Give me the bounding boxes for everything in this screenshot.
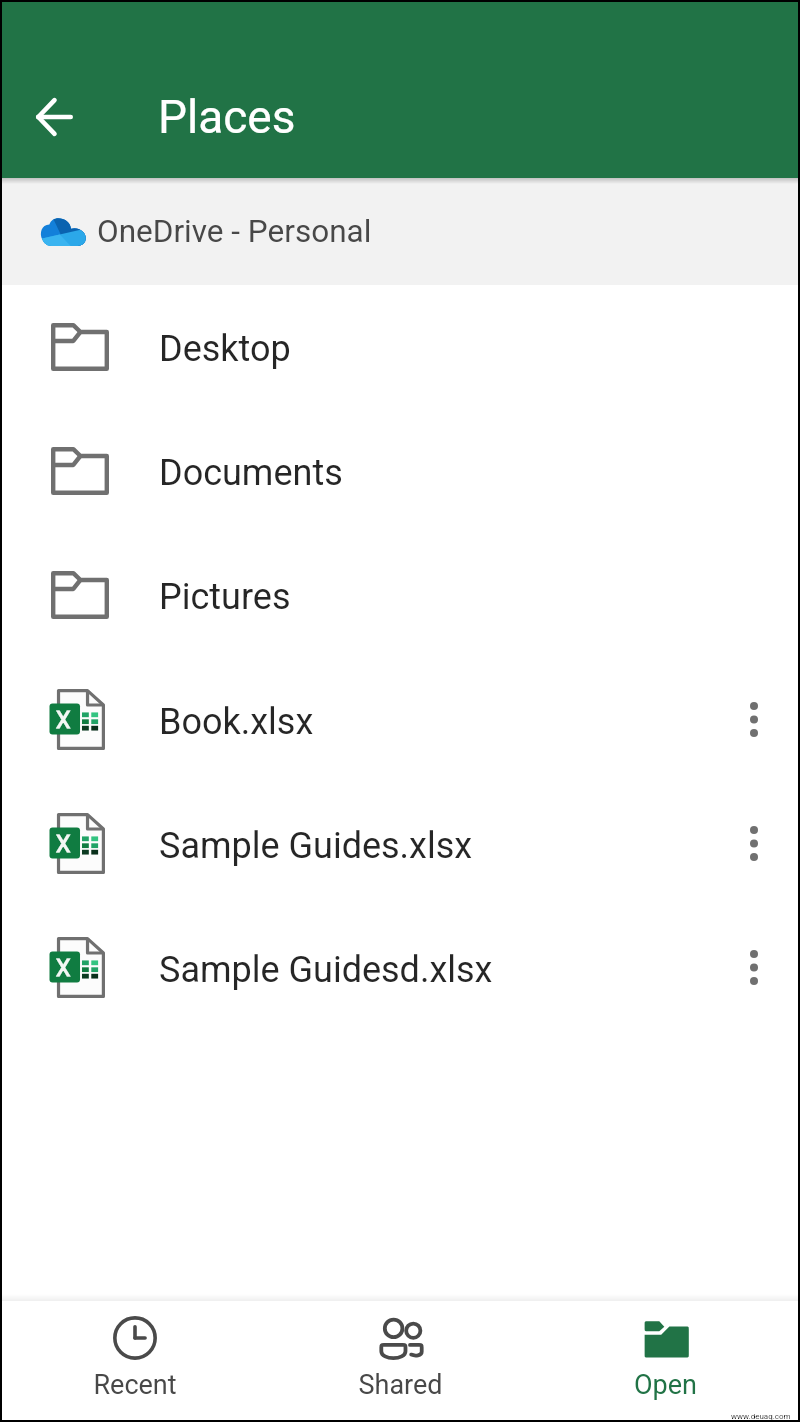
staticText: Desktop <box>159 328 291 370</box>
staticText: X <box>56 831 71 858</box>
staticText: Places <box>158 90 296 144</box>
button[interactable]: More options <box>714 679 794 759</box>
button[interactable]: Desktop <box>2 285 798 409</box>
button[interactable]: Pictures <box>2 533 798 657</box>
staticText: Recent <box>93 1369 177 1401</box>
button[interactable]: More options <box>714 803 794 883</box>
button[interactable]: More options <box>714 927 794 1007</box>
button[interactable]: X <box>2 905 798 1029</box>
button[interactable]: Documents <box>2 409 798 533</box>
staticText: Documents <box>159 452 343 494</box>
staticText: OneDrive - Personal <box>97 213 372 250</box>
staticText: Sample Guides.xlsx <box>159 825 714 867</box>
staticText: Open <box>634 1369 697 1401</box>
staticText: X <box>56 707 71 734</box>
button[interactable]: X <box>2 781 798 905</box>
staticText: X <box>56 955 71 982</box>
button[interactable]: Back <box>17 80 91 154</box>
staticText: Book.xlsx <box>159 701 714 743</box>
button[interactable]: X <box>2 657 798 781</box>
staticText: Sample Guidesd.xlsx <box>159 949 714 991</box>
button[interactable]: Recent <box>2 1294 268 1420</box>
staticText: www.deuaq.com <box>731 1412 791 1421</box>
staticText: Pictures <box>159 576 291 618</box>
button[interactable]: Open <box>533 1294 798 1420</box>
button[interactable]: OneDrive - Personal <box>2 178 798 285</box>
staticText: Shared <box>358 1369 443 1401</box>
button[interactable]: Shared <box>268 1294 533 1420</box>
